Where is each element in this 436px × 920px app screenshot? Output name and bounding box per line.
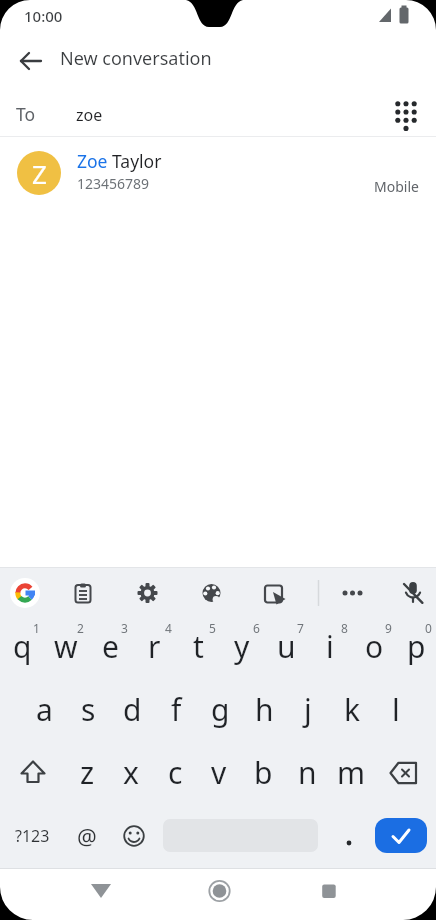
staticText: Z xyxy=(32,156,47,191)
staticText: n xyxy=(298,752,317,793)
staticText: New conversation xyxy=(60,46,212,71)
staticText: q xyxy=(13,626,32,667)
button[interactable] xyxy=(205,877,233,905)
button[interactable]: z xyxy=(65,741,109,804)
button[interactable]: d xyxy=(110,678,154,741)
button[interactable]: h xyxy=(242,678,286,741)
button[interactable] xyxy=(109,804,153,867)
staticText: zoe xyxy=(76,104,103,126)
staticText: r xyxy=(148,626,161,667)
staticText: t xyxy=(193,626,204,667)
button[interactable]: m xyxy=(329,741,373,804)
button[interactable]: s xyxy=(66,678,110,741)
button[interactable] xyxy=(129,575,165,611)
staticText: m xyxy=(337,752,366,793)
button[interactable]: y xyxy=(220,615,264,678)
button[interactable]: q xyxy=(0,615,44,678)
staticText: u xyxy=(277,626,296,667)
button[interactable] xyxy=(255,575,291,611)
button[interactable]: g xyxy=(198,678,242,741)
staticText: 7 xyxy=(297,620,304,636)
staticText: s xyxy=(81,689,96,730)
button[interactable] xyxy=(371,804,436,867)
button[interactable]: ?123 xyxy=(0,804,65,867)
staticText: k xyxy=(344,689,361,730)
button[interactable] xyxy=(0,741,65,804)
staticText: To xyxy=(16,102,36,126)
button[interactable] xyxy=(7,575,43,611)
staticText: d xyxy=(123,689,142,730)
staticText: 10:00 xyxy=(24,6,63,26)
staticText: i xyxy=(326,626,334,667)
staticText: z xyxy=(80,752,95,793)
staticText: 9 xyxy=(385,620,392,636)
staticText: p xyxy=(407,626,426,667)
button[interactable] xyxy=(87,877,115,905)
button[interactable]: p xyxy=(396,615,436,678)
staticText: 6 xyxy=(253,620,260,636)
staticText: 8 xyxy=(341,620,348,636)
button[interactable]: @ xyxy=(65,804,109,867)
button[interactable] xyxy=(193,575,229,611)
staticText: j xyxy=(304,689,312,730)
staticText: 1 xyxy=(33,620,40,636)
button[interactable]: w xyxy=(44,615,88,678)
button[interactable]: Z xyxy=(0,137,436,209)
button[interactable] xyxy=(65,575,101,611)
staticText: Zoe Taylor xyxy=(77,149,162,173)
staticText: w xyxy=(54,626,78,667)
staticText: 5 xyxy=(209,620,216,636)
button[interactable] xyxy=(153,804,327,867)
button[interactable]: v xyxy=(197,741,241,804)
button[interactable] xyxy=(334,575,370,611)
button[interactable] xyxy=(390,94,424,128)
staticText: l xyxy=(392,689,400,730)
staticText: e xyxy=(102,626,119,667)
button[interactable] xyxy=(315,877,343,905)
button[interactable]: o xyxy=(352,615,396,678)
button[interactable]: a xyxy=(22,678,66,741)
staticText: o xyxy=(365,626,384,667)
button[interactable]: l xyxy=(374,678,418,741)
staticText: ?123 xyxy=(15,825,50,847)
staticText: Mobile xyxy=(374,177,419,196)
button[interactable]: t xyxy=(176,615,220,678)
staticText: h xyxy=(255,689,274,730)
button[interactable]: r xyxy=(132,615,176,678)
button[interactable]: f xyxy=(154,678,198,741)
button[interactable]: e xyxy=(88,615,132,678)
button[interactable]: b xyxy=(241,741,285,804)
staticText: 2 xyxy=(77,620,84,636)
staticText: x xyxy=(123,752,139,793)
staticText: 123456789 xyxy=(77,174,150,193)
button[interactable] xyxy=(327,804,371,867)
button[interactable]: n xyxy=(285,741,329,804)
button[interactable]: u xyxy=(264,615,308,678)
staticText: @ xyxy=(77,821,97,851)
staticText: c xyxy=(168,752,183,793)
button[interactable]: i xyxy=(308,615,352,678)
staticText: 0 xyxy=(425,620,432,636)
staticText: f xyxy=(171,689,182,730)
button[interactable]: x xyxy=(109,741,153,804)
staticText: b xyxy=(254,752,273,793)
button[interactable] xyxy=(395,575,431,611)
staticText: y xyxy=(234,626,250,667)
staticText: 4 xyxy=(165,620,172,636)
button[interactable]: k xyxy=(330,678,374,741)
button[interactable]: j xyxy=(286,678,330,741)
staticText: v xyxy=(211,752,227,793)
button[interactable] xyxy=(373,741,436,804)
button[interactable] xyxy=(14,44,48,78)
staticText: a xyxy=(36,689,53,730)
staticText: 3 xyxy=(121,620,128,636)
button[interactable]: c xyxy=(153,741,197,804)
staticText: g xyxy=(211,689,230,730)
